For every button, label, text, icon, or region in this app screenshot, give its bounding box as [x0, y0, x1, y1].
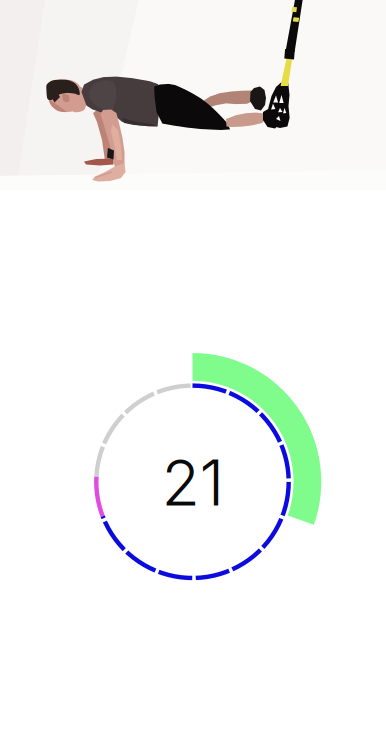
- staticText: 21: [161, 445, 224, 521]
